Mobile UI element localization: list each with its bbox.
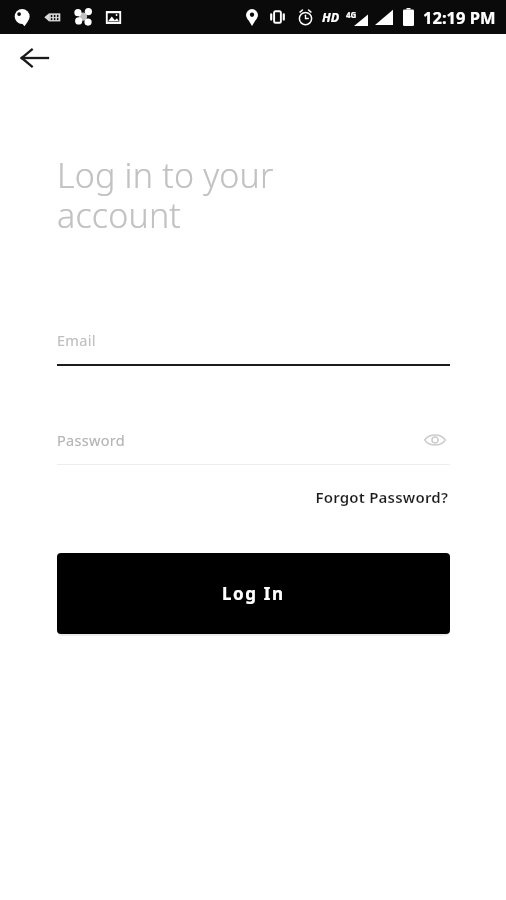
staticText: HD — [322, 9, 340, 26]
button[interactable]: Back — [10, 34, 58, 82]
staticText: 12:19 PM — [423, 6, 496, 28]
staticText: Password — [57, 430, 125, 450]
staticText: Forgot Password? — [315, 487, 448, 507]
staticText: Email — [57, 330, 96, 350]
staticText: Log In — [222, 582, 285, 605]
button[interactable]: Email — [57, 324, 450, 366]
button[interactable]: Password — [57, 424, 450, 465]
button[interactable]: Forgot Password? — [313, 484, 450, 510]
staticText: 4G — [346, 9, 357, 20]
button[interactable]: Log In — [57, 553, 450, 634]
staticText: Log in to your account — [57, 152, 274, 238]
button[interactable]: Show password — [420, 425, 450, 455]
